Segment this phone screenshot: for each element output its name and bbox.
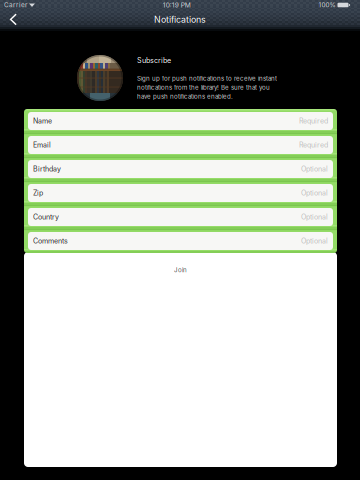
staticText: Required — [299, 117, 328, 125]
staticText: Optional — [301, 189, 328, 197]
button[interactable]: Email — [28, 136, 333, 154]
staticText: Required — [299, 141, 328, 149]
button[interactable]: Country — [28, 208, 333, 226]
staticText: Optional — [301, 237, 328, 245]
staticText: Subscribe — [137, 56, 171, 65]
staticText: 100% — [318, 1, 335, 9]
staticText: Carrier — [4, 1, 27, 9]
staticText: Zip — [33, 189, 43, 197]
button[interactable]: Comments — [28, 232, 333, 250]
staticText: Name — [33, 117, 52, 125]
button[interactable]: Join — [156, 263, 204, 277]
button[interactable]: Zip — [28, 184, 333, 202]
staticText: 10:19 PM — [163, 1, 191, 9]
button[interactable]: Birthday — [28, 160, 333, 178]
staticText: Notifications — [154, 14, 206, 25]
staticText: Optional — [301, 165, 328, 173]
staticText: Comments — [33, 237, 68, 245]
staticText: Birthday — [33, 165, 61, 173]
staticText: Join — [174, 266, 187, 274]
staticText: Email — [33, 141, 51, 149]
staticText: Country — [33, 213, 59, 221]
button[interactable]: Name — [28, 112, 333, 130]
staticText: Sign up for push notifications to receiv… — [137, 75, 277, 100]
staticText: Optional — [301, 213, 328, 221]
button[interactable]: Back — [0, 9, 30, 30]
